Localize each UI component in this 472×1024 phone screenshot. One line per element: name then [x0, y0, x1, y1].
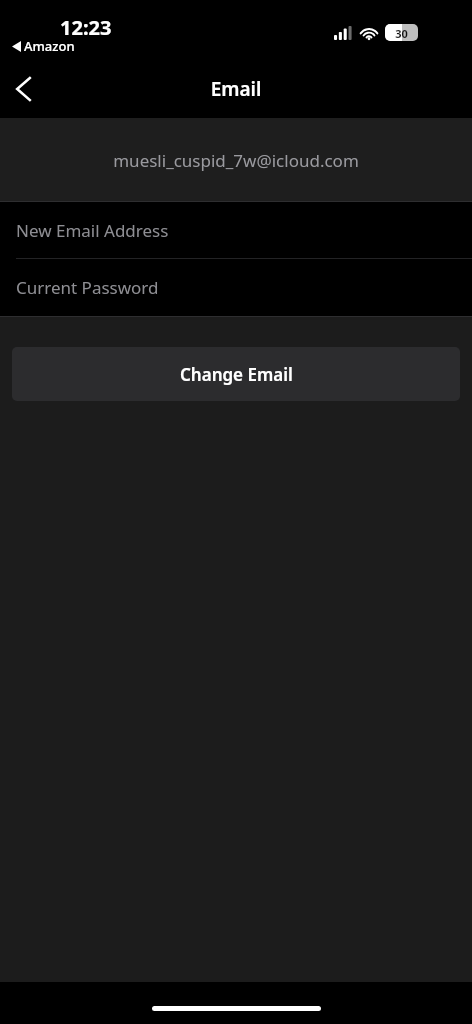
staticText: muesli_cuspid_7w@icloud.com: [0, 149, 472, 172]
button[interactable]: Change Email: [12, 347, 460, 401]
button[interactable]: Back: [0, 66, 46, 112]
button[interactable]: muesli_cuspid_7w@icloud.com: [0, 118, 472, 202]
button[interactable]: New Email Address: [0, 202, 472, 259]
staticText: 30: [385, 26, 418, 41]
staticText: Change Email: [180, 363, 293, 386]
button[interactable]: Current Password: [0, 259, 472, 316]
staticText: 12:23: [60, 14, 112, 41]
staticText: Amazon: [24, 37, 75, 55]
staticText: New Email Address: [16, 219, 169, 242]
staticText: Current Password: [16, 276, 159, 299]
staticText: Email: [0, 76, 472, 102]
